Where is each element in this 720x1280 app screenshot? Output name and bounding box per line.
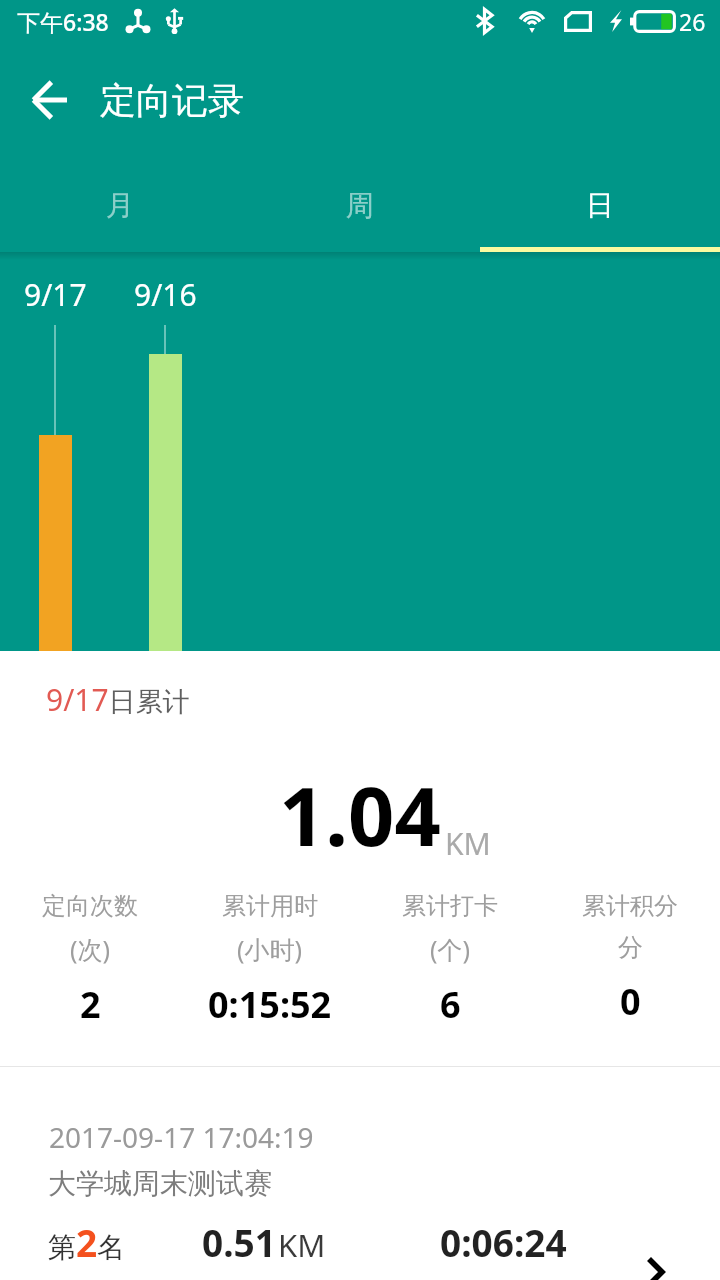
button[interactable]: 日	[480, 158, 720, 252]
staticText: 0.51	[202, 1217, 276, 1267]
staticText: 累计用时	[222, 891, 318, 921]
staticText: 累计打卡	[402, 891, 498, 921]
staticText: 日	[586, 188, 614, 223]
staticText: 9/17	[24, 274, 87, 315]
button[interactable]: 月	[0, 158, 240, 252]
staticText: 定向次数	[42, 891, 138, 921]
staticText: 0:15:52	[208, 980, 332, 1029]
button[interactable]: Back	[8, 58, 92, 142]
button[interactable]: Open record detail	[620, 1232, 680, 1280]
staticText: (次)	[70, 932, 111, 966]
staticText: 分	[618, 932, 643, 963]
staticText: (小时)	[237, 932, 303, 966]
staticText: 2	[80, 980, 101, 1029]
staticText: 26	[679, 6, 706, 37]
button[interactable]: 周	[240, 158, 480, 252]
staticText: 1.04	[279, 759, 441, 869]
staticText: 周	[346, 188, 374, 223]
staticText: 0:06:24	[440, 1217, 567, 1267]
staticText: (个)	[430, 932, 471, 966]
staticText: 累计积分	[582, 891, 678, 921]
staticText: 0	[620, 977, 641, 1026]
staticText: 大学城周末测试赛	[48, 1166, 272, 1201]
staticText: KM	[445, 823, 491, 864]
staticText: 月	[106, 188, 134, 223]
button[interactable]: 2017-09-17 17:04:19	[0, 1067, 720, 1280]
staticText: 第2名	[48, 1217, 126, 1267]
staticText: KM	[278, 1224, 326, 1266]
staticText: 6	[440, 980, 461, 1029]
staticText: 下午6:38	[17, 6, 109, 37]
staticText: 9/17日累计	[46, 679, 190, 720]
staticText: 2017-09-17 17:04:19	[49, 1118, 314, 1156]
staticText: 9/16	[134, 274, 197, 315]
staticText: 定向记录	[100, 78, 244, 123]
